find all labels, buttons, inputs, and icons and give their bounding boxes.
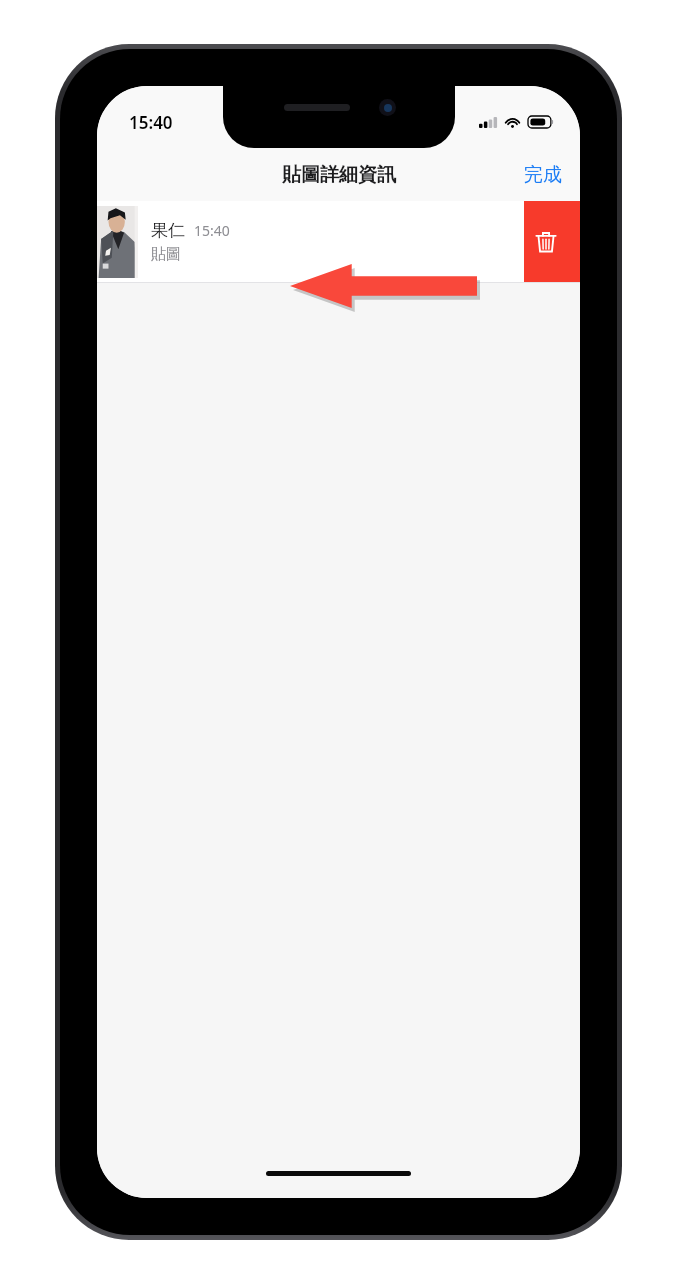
button[interactable]: 完成 xyxy=(506,155,580,195)
staticText: 15:40 xyxy=(129,111,173,134)
staticText: 15:40 xyxy=(194,221,230,240)
staticText: 完成 xyxy=(524,163,562,187)
staticText: 果仁 xyxy=(151,220,185,241)
button[interactable]: Delete xyxy=(524,201,580,283)
staticText: 貼圖詳細資訊 xyxy=(282,163,396,187)
button[interactable]: 果仁 xyxy=(97,201,524,283)
staticText: 貼圖 xyxy=(151,245,181,264)
